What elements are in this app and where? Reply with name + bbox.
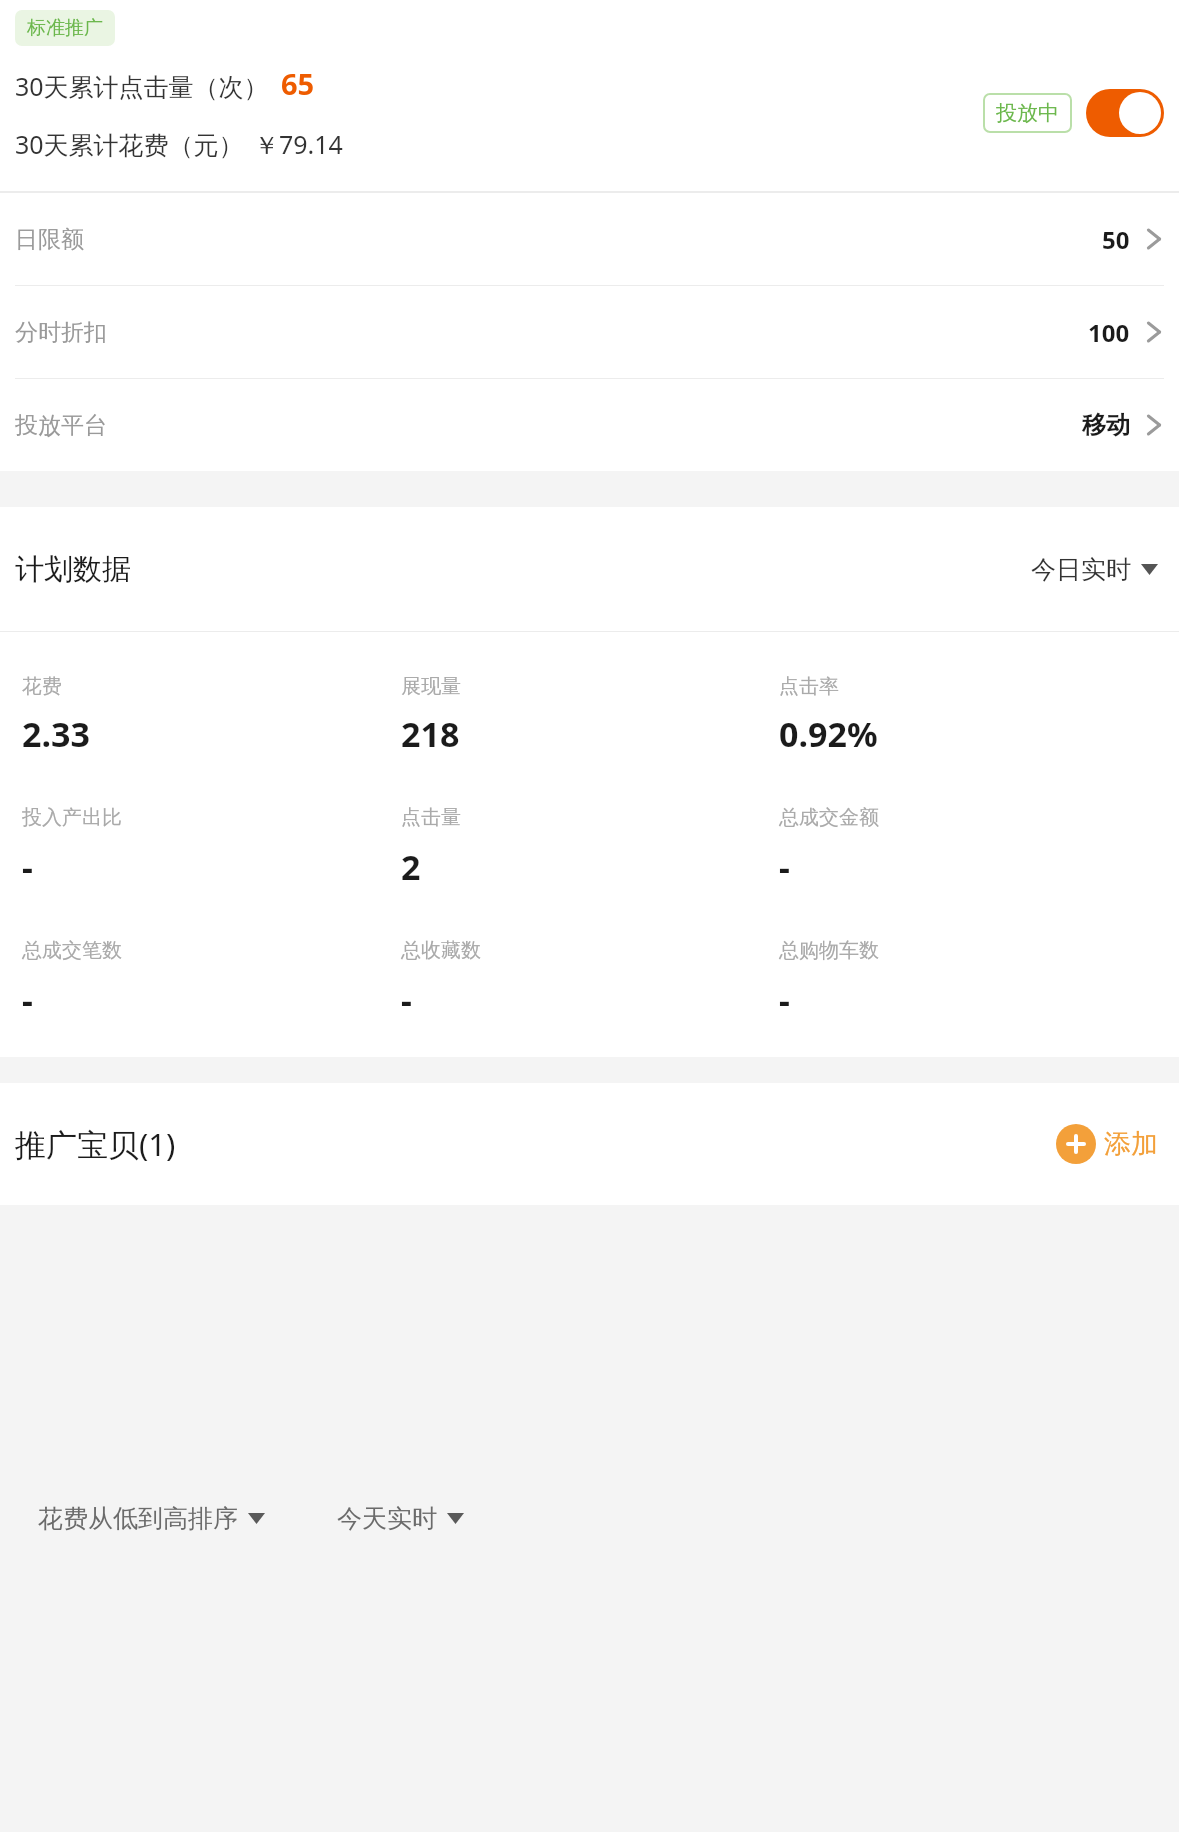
staticText: - (779, 844, 790, 890)
staticText: 总收藏数 (401, 938, 481, 963)
staticText: 投入产出比 (22, 805, 122, 830)
staticText: 推广宝贝(1) (15, 1123, 176, 1165)
staticText: 30天累计花费（元） (15, 127, 244, 161)
staticText: 2.33 (22, 711, 90, 757)
staticText: 65 (281, 64, 315, 103)
staticText: 218 (401, 711, 460, 757)
staticText: 总成交金额 (779, 805, 879, 830)
staticText: 点击量 (401, 805, 461, 830)
button[interactable]: 分时折扣 (0, 286, 1179, 378)
staticText: - (779, 977, 790, 1023)
staticText: 0.92% (779, 711, 878, 757)
staticText: 投放中 (996, 100, 1059, 126)
staticText: 标准推广 (27, 16, 103, 40)
staticText: 花费从低到高排序 (38, 1503, 238, 1534)
button[interactable]: 投放中 (983, 93, 1072, 133)
button[interactable]: 花费从低到高排序 (30, 1495, 273, 1542)
staticText: 分时折扣 (15, 318, 107, 347)
staticText: 30天累计点击量（次） (15, 69, 269, 103)
staticText: 计划数据 (15, 551, 131, 588)
button[interactable]: 日限额 (0, 193, 1179, 285)
staticText: ￥79.14 (254, 127, 343, 161)
staticText: 总购物车数 (779, 938, 879, 963)
staticText: 今天实时 (337, 1503, 437, 1534)
staticText: 移动 (1082, 410, 1130, 440)
staticText: 100 (1088, 316, 1130, 349)
staticText: 日限额 (15, 225, 84, 254)
staticText: 2 (401, 844, 421, 890)
button[interactable]: 投放平台 (0, 379, 1179, 471)
button[interactable]: 今日实时 (1025, 548, 1164, 591)
staticText: 展现量 (401, 674, 461, 699)
button[interactable]: 投放开关 (1086, 89, 1164, 137)
staticText: 今日实时 (1031, 554, 1131, 585)
staticText: 添加 (1104, 1127, 1158, 1161)
staticText: - (22, 844, 33, 890)
button[interactable]: 今天实时 (329, 1495, 472, 1542)
staticText: - (22, 977, 33, 1023)
staticText: 花费 (22, 674, 62, 699)
staticText: 点击率 (779, 674, 839, 699)
button[interactable]: 添加 (1050, 1118, 1164, 1170)
staticText: 投放平台 (15, 411, 107, 440)
staticText: 50 (1102, 223, 1130, 256)
staticText: - (401, 977, 412, 1023)
staticText: 总成交笔数 (22, 938, 122, 963)
